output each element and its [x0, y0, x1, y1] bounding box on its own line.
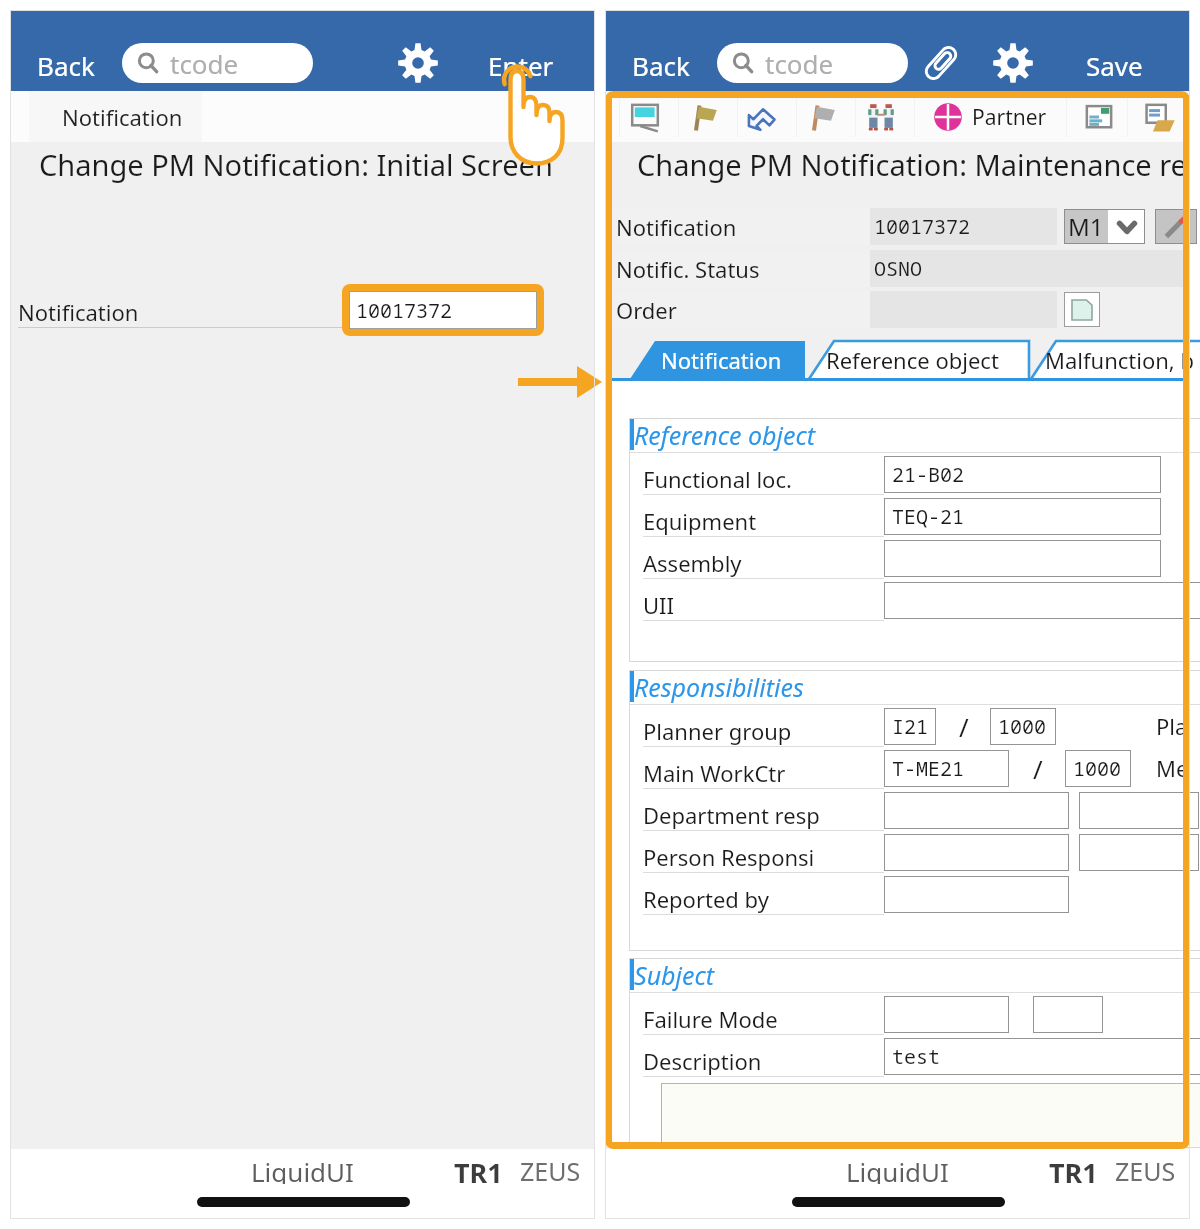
button[interactable]: tcode — [122, 43, 313, 83]
button[interactable]: Save — [1076, 42, 1153, 88]
button[interactable]: Partner — [933, 92, 1047, 142]
staticText: I21 — [892, 713, 928, 740]
button[interactable]: Display — [615, 92, 674, 142]
staticText: Me — [1156, 753, 1189, 783]
staticText: M1 — [1068, 210, 1104, 243]
staticText: / — [959, 709, 969, 744]
staticText: test — [892, 1043, 940, 1070]
button[interactable]: 21-B02 — [884, 456, 1161, 493]
button[interactable] — [1079, 834, 1199, 871]
staticText: 10017372 — [874, 213, 970, 240]
button[interactable]: Edit — [1155, 209, 1197, 244]
staticText: tcode — [765, 46, 834, 81]
button[interactable] — [884, 876, 1069, 913]
staticText: Save — [1086, 48, 1143, 83]
button[interactable]: 1000 — [990, 708, 1056, 745]
staticText: Subject — [634, 958, 715, 992]
staticText: TEQ-21 — [892, 503, 964, 530]
button[interactable]: 1000 — [1065, 750, 1131, 787]
staticText: Reference object — [634, 418, 816, 452]
button[interactable]: test — [884, 1038, 1200, 1075]
staticText: 10017372 — [356, 297, 452, 324]
staticText: UII — [643, 590, 674, 620]
button[interactable]: I21 — [884, 708, 936, 745]
button[interactable]: Flag — [674, 92, 733, 142]
staticText: Reference object — [826, 345, 999, 375]
button[interactable] — [1079, 792, 1199, 829]
button[interactable]: Settings — [990, 40, 1036, 86]
button[interactable] — [884, 996, 1009, 1033]
staticText: / — [1033, 751, 1043, 786]
button[interactable]: Back — [622, 42, 700, 88]
button[interactable]: 10017372 — [342, 284, 544, 336]
staticText: TR1 — [454, 1154, 503, 1184]
staticText: Notific. Status — [616, 254, 760, 284]
staticText: Description — [643, 1046, 762, 1076]
staticText: Change PM Notification: Initial Screen — [39, 145, 553, 184]
staticText: Assembly — [643, 548, 742, 578]
button[interactable] — [884, 582, 1200, 619]
staticText: Change PM Notification: Maintenance re — [637, 145, 1187, 184]
button[interactable] — [1033, 996, 1103, 1033]
staticText: Notification — [62, 102, 183, 132]
staticText: LiquidUI — [846, 1154, 949, 1184]
staticText: T-ME21 — [892, 755, 964, 782]
staticText: ZEUS — [520, 1154, 581, 1184]
staticText: Partner — [972, 103, 1047, 132]
staticText: LiquidUI — [251, 1154, 354, 1184]
staticText: TR1 — [1049, 1154, 1098, 1184]
staticText: 1000 — [998, 713, 1046, 740]
button[interactable]: TEQ-21 — [884, 498, 1161, 535]
staticText: Back — [37, 48, 95, 83]
button[interactable]: Partners — [851, 92, 910, 142]
button[interactable] — [884, 540, 1161, 577]
staticText: 1000 — [1073, 755, 1121, 782]
staticText: Notification — [661, 345, 782, 375]
staticText: Equipment — [643, 506, 757, 536]
staticText: Enter — [488, 48, 554, 83]
button[interactable]: Export — [1132, 92, 1188, 142]
staticText: Notification — [18, 297, 139, 327]
staticText: Responsibilities — [634, 670, 804, 704]
button[interactable]: Enter — [478, 42, 564, 88]
staticText: Main WorkCtr — [643, 758, 786, 788]
button[interactable]: Settings — [395, 40, 441, 86]
button[interactable]: T-ME21 — [884, 750, 1009, 787]
staticText: Department resp — [643, 800, 820, 830]
staticText: Planner group — [643, 716, 792, 746]
staticText: tcode — [170, 46, 239, 81]
button[interactable]: tcode — [717, 43, 908, 83]
button[interactable]: Flag off — [792, 92, 851, 142]
button[interactable]: Malfunction, b — [1029, 337, 1200, 382]
button[interactable]: Notification — [29, 91, 202, 142]
staticText: Person Responsi — [643, 842, 815, 872]
button[interactable]: Undo — [733, 92, 792, 142]
button[interactable]: Attach — [918, 40, 964, 86]
staticText: 21-B02 — [892, 461, 964, 488]
button[interactable] — [884, 834, 1069, 871]
button[interactable]: M1 — [1064, 209, 1145, 244]
button[interactable]: Reference object — [807, 337, 1029, 382]
staticText: OSNO — [874, 255, 922, 282]
staticText: Pla — [1156, 711, 1188, 741]
staticText: ZEUS — [1115, 1154, 1176, 1184]
staticText: Order — [616, 295, 677, 325]
staticText: Notification — [616, 212, 737, 242]
staticText: Functional loc. — [643, 464, 792, 494]
button[interactable]: Notification — [628, 337, 805, 382]
staticText: Back — [632, 48, 690, 83]
staticText: Failure Mode — [643, 1004, 778, 1034]
button[interactable]: Note — [1071, 92, 1127, 142]
button[interactable]: Document — [1064, 292, 1100, 327]
button[interactable] — [884, 792, 1069, 829]
staticText: Malfunction, b — [1045, 345, 1194, 375]
staticText: Reported by — [643, 884, 769, 914]
button[interactable]: Back — [27, 42, 105, 88]
